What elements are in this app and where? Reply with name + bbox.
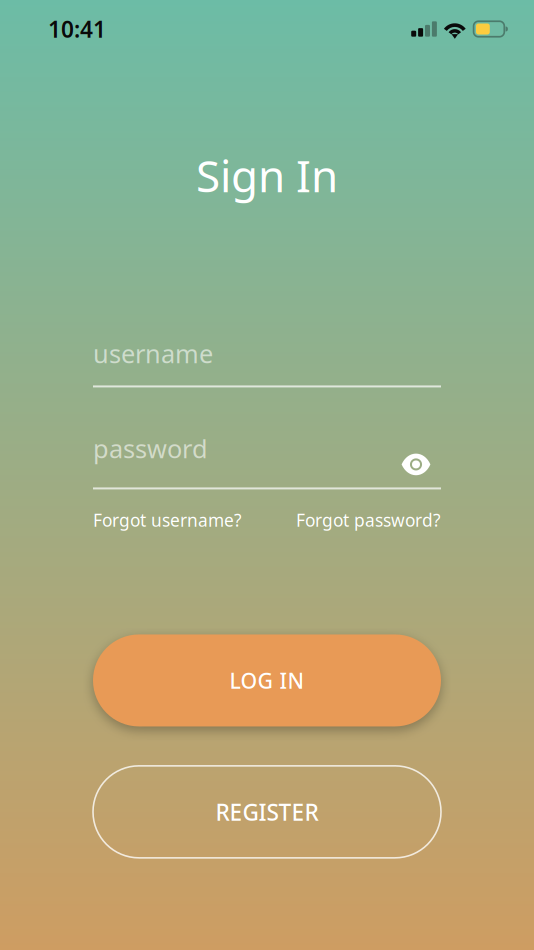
button[interactable]: REGISTER: [93, 766, 441, 858]
staticText: Forgot password?: [296, 508, 441, 531]
button[interactable]: Forgot password?: [296, 508, 441, 531]
staticText: 10:41: [48, 14, 106, 44]
staticText: Sign In: [196, 146, 338, 204]
button[interactable]: Forgot username?: [93, 508, 242, 531]
staticText: LOG IN: [229, 666, 304, 695]
staticText: Forgot username?: [93, 508, 242, 531]
button[interactable]: LOG IN: [93, 634, 441, 726]
staticText: password: [93, 432, 208, 465]
staticText: REGISTER: [215, 797, 318, 827]
staticText: username: [93, 337, 213, 370]
button[interactable]: Show password: [399, 447, 433, 481]
